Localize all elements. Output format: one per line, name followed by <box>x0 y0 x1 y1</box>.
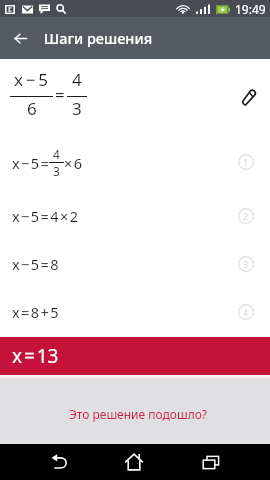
staticText: 3 <box>72 97 82 120</box>
staticText: 3 <box>243 258 249 270</box>
button[interactable]: Recent apps <box>193 452 229 472</box>
button[interactable]: Back <box>0 17 40 59</box>
staticText: x − 5 = 4 × 2 <box>12 206 79 226</box>
staticText: x − 5 <box>14 68 49 91</box>
staticText: 6 <box>27 97 37 120</box>
staticText: 4 <box>243 306 249 318</box>
button[interactable]: x − 5 = 4 × 2 <box>0 192 270 240</box>
button[interactable]: x = 13 <box>0 337 270 375</box>
staticText: 3 <box>53 163 60 179</box>
button[interactable]: x = 8 + 5 <box>0 288 270 336</box>
staticText: Шаги решения <box>44 28 153 48</box>
staticText: 19:49 <box>235 1 266 17</box>
staticText: = <box>55 83 65 106</box>
staticText: 2 <box>243 210 249 222</box>
staticText: 4 <box>72 68 82 91</box>
button[interactable]: Back <box>41 452 77 472</box>
button[interactable]: Home <box>116 452 152 472</box>
staticText: x = 13 <box>12 343 59 369</box>
staticText: x − 5 = 8 <box>12 254 59 274</box>
staticText: 1 <box>243 156 249 168</box>
staticText: × 6 <box>64 153 83 173</box>
button[interactable]: x − 5 = 8 <box>0 240 270 288</box>
staticText: Это решение подошло? <box>69 406 208 422</box>
button[interactable]: x − 5 = <box>0 138 270 186</box>
button[interactable]: Это решение подошло? <box>69 406 208 422</box>
button[interactable]: Edit equation <box>234 82 263 111</box>
staticText: x = 8 + 5 <box>12 302 59 322</box>
staticText: x − 5 = <box>12 153 49 173</box>
staticText: 4 <box>53 146 60 162</box>
